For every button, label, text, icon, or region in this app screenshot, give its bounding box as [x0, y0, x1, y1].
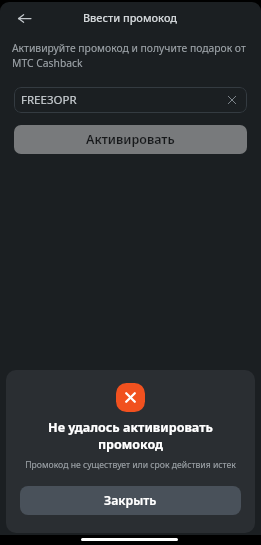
staticText: Не удалось активировать промокод [6, 419, 255, 453]
staticText: Промокод не существует или срок действия… [6, 459, 255, 471]
button[interactable]: FREE3OPR [14, 87, 247, 113]
button[interactable]: Закрыть [20, 486, 241, 515]
staticText: Закрыть [104, 492, 157, 509]
staticText: Активируйте промокод и получите подарок … [12, 41, 246, 70]
staticText: FREE3OPR [21, 92, 77, 108]
staticText: Ввести промокод [83, 10, 178, 25]
button[interactable]: Back [10, 4, 38, 32]
button[interactable]: Активировать [14, 125, 247, 154]
staticText: Активировать [86, 131, 175, 148]
button[interactable]: Clear text [224, 92, 240, 108]
